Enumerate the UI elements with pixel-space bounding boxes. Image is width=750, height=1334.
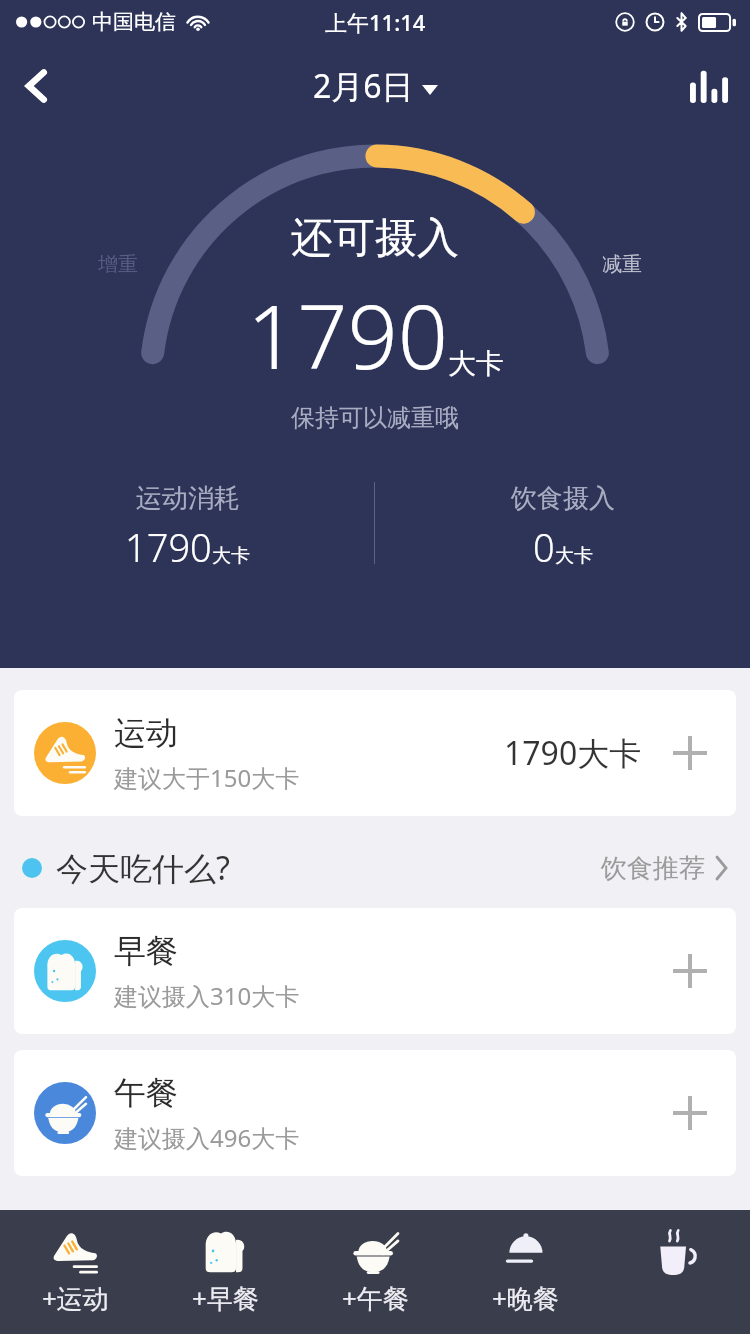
staticText: 今天吃什么? — [56, 846, 230, 890]
staticText: 0 — [533, 521, 555, 573]
staticText: +早餐 — [192, 1280, 259, 1316]
staticText: 减重 — [602, 252, 642, 277]
button[interactable]: 早餐 — [14, 908, 736, 1034]
staticText: 保持可以减重哦 — [291, 403, 459, 433]
staticText: 运动消耗 — [136, 482, 240, 515]
staticText: 建议摄入310大卡 — [114, 979, 300, 1012]
staticText: 1790大卡 — [504, 731, 642, 775]
button[interactable]: Add 早餐 — [664, 945, 716, 997]
staticText: 1790 — [125, 521, 212, 573]
staticText: 饮食推荐 — [601, 852, 705, 885]
button[interactable]: Statistics — [678, 55, 740, 117]
button[interactable]: 午餐 — [14, 1050, 736, 1176]
staticText: 饮食摄入 — [511, 482, 615, 515]
button[interactable]: Add 午餐 — [664, 1087, 716, 1139]
staticText: 大卡 — [448, 346, 504, 381]
button[interactable]: +早餐 — [150, 1210, 300, 1334]
staticText: 增重 — [98, 252, 138, 277]
staticText: 早餐 — [114, 931, 178, 971]
staticText: 中国电信 — [92, 9, 176, 35]
button[interactable]: +运动 — [0, 1210, 150, 1334]
staticText: +晚餐 — [492, 1280, 559, 1316]
staticText: +午餐 — [342, 1280, 409, 1316]
button[interactable]: Back — [6, 55, 68, 117]
button[interactable]: Add drink — [600, 1210, 750, 1334]
button[interactable]: 运动 — [14, 690, 736, 816]
button[interactable]: Add 运动 — [664, 727, 716, 779]
staticText: 大卡 — [555, 544, 593, 568]
button[interactable]: +晚餐 — [450, 1210, 600, 1334]
staticText: 上午11:14 — [325, 7, 426, 37]
button[interactable]: 今天吃什么? — [22, 842, 728, 894]
staticText: 还可摄入 — [291, 212, 459, 265]
staticText: 2月6日 — [313, 64, 414, 108]
staticText: 大卡 — [212, 544, 250, 568]
staticText: 1790 — [247, 275, 448, 395]
staticText: 建议大于150大卡 — [114, 761, 300, 794]
button[interactable]: +午餐 — [300, 1210, 450, 1334]
staticText: 建议摄入496大卡 — [114, 1121, 300, 1154]
staticText: +运动 — [42, 1280, 109, 1316]
button[interactable]: 2月6日 — [303, 60, 448, 112]
staticText: 午餐 — [114, 1073, 178, 1113]
staticText: 运动 — [114, 713, 178, 753]
